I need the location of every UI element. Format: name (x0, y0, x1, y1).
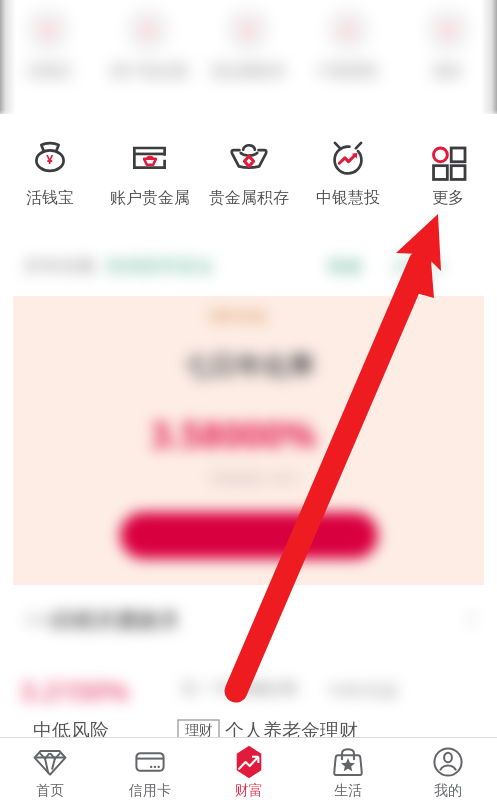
staticText: 1000元起 (326, 678, 399, 701)
staticText: 稳健 (327, 255, 363, 278)
staticText: 3.58000% (150, 410, 317, 459)
staticText: 持有份额 (24, 255, 96, 278)
staticText: 贵金属积存 (209, 188, 289, 208)
staticText: 中银 (25, 610, 61, 633)
staticText: 生活 (334, 782, 362, 800)
button[interactable]: 中银慧投 (298, 118, 397, 208)
staticText: 起购 (264, 678, 298, 699)
staticText: 进取型 (391, 255, 445, 278)
staticText: 首页 (36, 782, 64, 800)
staticText: 我的 (434, 782, 462, 800)
button[interactable]: ¥ (0, 118, 99, 208)
button[interactable]: 更多 (398, 118, 497, 208)
button[interactable]: 生活 (298, 738, 397, 800)
staticText: 更多 (433, 62, 463, 81)
button[interactable]: 首页 (0, 738, 99, 800)
button[interactable]: 贵金属积存 (199, 118, 298, 208)
staticText: 近一年涨幅 (181, 678, 266, 699)
staticText: 热销推荐基金 (106, 255, 214, 278)
staticText: 3.2150% (20, 672, 130, 709)
staticText: 中低风险 (33, 719, 109, 743)
staticText: 七日年化率 (184, 350, 314, 383)
button[interactable]: 信用卡 (100, 738, 199, 800)
staticText: 中银慧投 (318, 62, 378, 81)
staticText: 财富 (235, 782, 263, 800)
staticText: 理财 (185, 722, 213, 740)
staticText: ¥ (46, 150, 54, 168)
button[interactable]: 财富 (199, 738, 298, 800)
other: Annotation arrow (0, 0, 497, 803)
staticText: 更多 (432, 188, 464, 208)
staticText: 活钱宝 (27, 62, 72, 81)
staticText: 个人养老金理财 (225, 719, 358, 743)
staticText: 中银慧投 (316, 188, 380, 208)
staticText: 活钱宝 (26, 188, 74, 208)
staticText: 贵金属积存 (211, 62, 286, 81)
staticText: 日积月累按月 (53, 608, 179, 634)
staticText: 信用卡 (129, 782, 171, 800)
staticText: 限时加息 (211, 308, 267, 326)
staticText: 账户贵金属 (112, 62, 187, 81)
staticText: 账户贵金属 (110, 188, 190, 208)
button[interactable]: 我的 (398, 738, 497, 800)
button[interactable]: 账户贵金属 (100, 118, 199, 208)
